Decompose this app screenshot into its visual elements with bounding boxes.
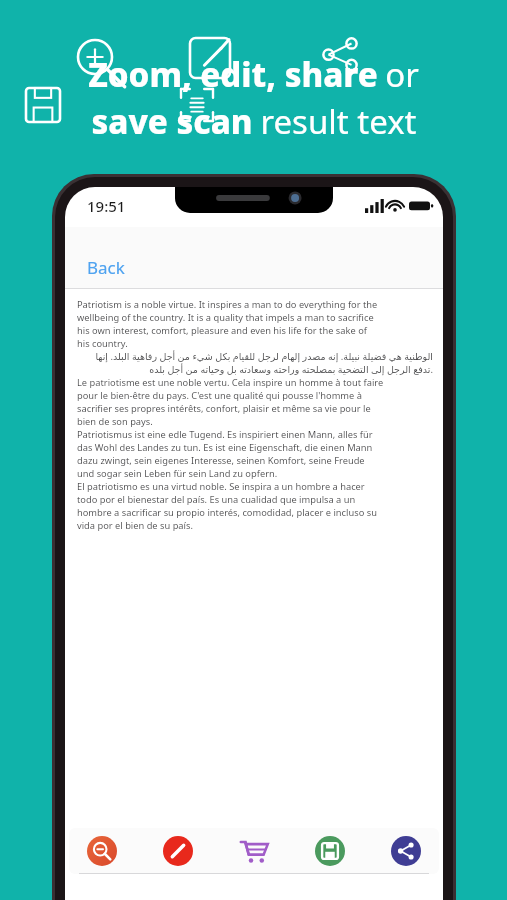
staticText: wellbeing of the country. It is a qualit… bbox=[77, 311, 433, 324]
staticText: الوطنية هي فضيلة نبيلة. إنه مصدر إلهام ل… bbox=[77, 350, 433, 363]
staticText: todo por el bienestar del país. Es una c… bbox=[77, 493, 433, 506]
staticText: Le patriotisme est une noble vertu. Cela… bbox=[77, 376, 433, 389]
staticText: Patriotismus ist eine edle Tugend. Es in… bbox=[77, 428, 433, 441]
staticText: Patriotism is a noble virtue. It inspire… bbox=[77, 298, 433, 311]
staticText: pour le bien-être du pays. C'est une qua… bbox=[77, 389, 433, 402]
staticText: result text bbox=[260, 99, 417, 144]
button[interactable]: Save bbox=[309, 830, 351, 872]
staticText: save scan bbox=[91, 99, 253, 144]
staticText: El patriotismo es una virtud noble. Se i… bbox=[77, 480, 433, 493]
staticText: his own interest, comfort, pleasure and … bbox=[77, 324, 433, 337]
staticText: sacrifier ses propres intérêts, confort,… bbox=[77, 402, 433, 415]
staticText: dazu zwingt, sein eigenes Interesse, sei… bbox=[77, 454, 433, 467]
button[interactable]: Back bbox=[81, 252, 131, 283]
staticText: تدفع الرجل إلى التضحية بمصلحته وراحته وس… bbox=[77, 363, 433, 376]
staticText: his country. bbox=[77, 337, 433, 350]
button[interactable]: Zoom out bbox=[81, 830, 123, 872]
staticText: hombre a sacrificar su propio interés, c… bbox=[77, 506, 433, 519]
staticText: Back bbox=[87, 256, 125, 279]
button[interactable]: Cart bbox=[233, 830, 275, 872]
staticText: und sogar sein Leben für sein Land zu op… bbox=[77, 467, 433, 480]
button[interactable]: Edit bbox=[157, 830, 199, 872]
staticText: or bbox=[385, 52, 419, 97]
staticText: vida por el bien de su país. bbox=[77, 519, 433, 532]
staticText: 19:51 bbox=[87, 196, 126, 216]
staticText: bien de son pays. bbox=[77, 415, 433, 428]
button[interactable]: Share bbox=[385, 830, 427, 872]
staticText: das Wohl des Landes zu tun. Es ist eine … bbox=[77, 441, 433, 454]
staticText: Zoom, edit, share bbox=[88, 52, 378, 97]
